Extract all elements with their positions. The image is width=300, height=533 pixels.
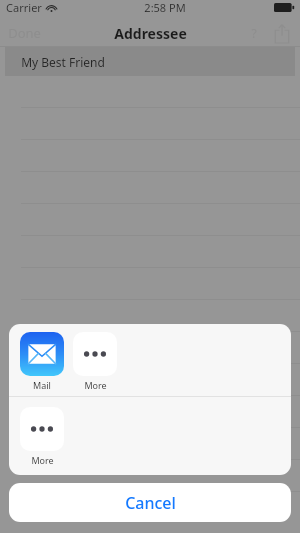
staticText: More xyxy=(31,454,54,466)
staticText: Cancel xyxy=(125,492,176,514)
button[interactable]: Cancel xyxy=(9,483,291,522)
staticText: Carrier xyxy=(6,0,42,15)
button[interactable]: My Best Friend xyxy=(5,47,295,76)
staticText: Mail xyxy=(33,379,51,391)
staticText: My Best Friend xyxy=(21,54,105,70)
button[interactable]: Mail xyxy=(20,332,64,391)
button[interactable]: More xyxy=(20,407,64,466)
staticText: More xyxy=(84,379,107,391)
staticText: 2:58 PM xyxy=(144,0,186,15)
staticText: Addressee xyxy=(114,24,187,43)
button[interactable]: More xyxy=(73,332,117,391)
